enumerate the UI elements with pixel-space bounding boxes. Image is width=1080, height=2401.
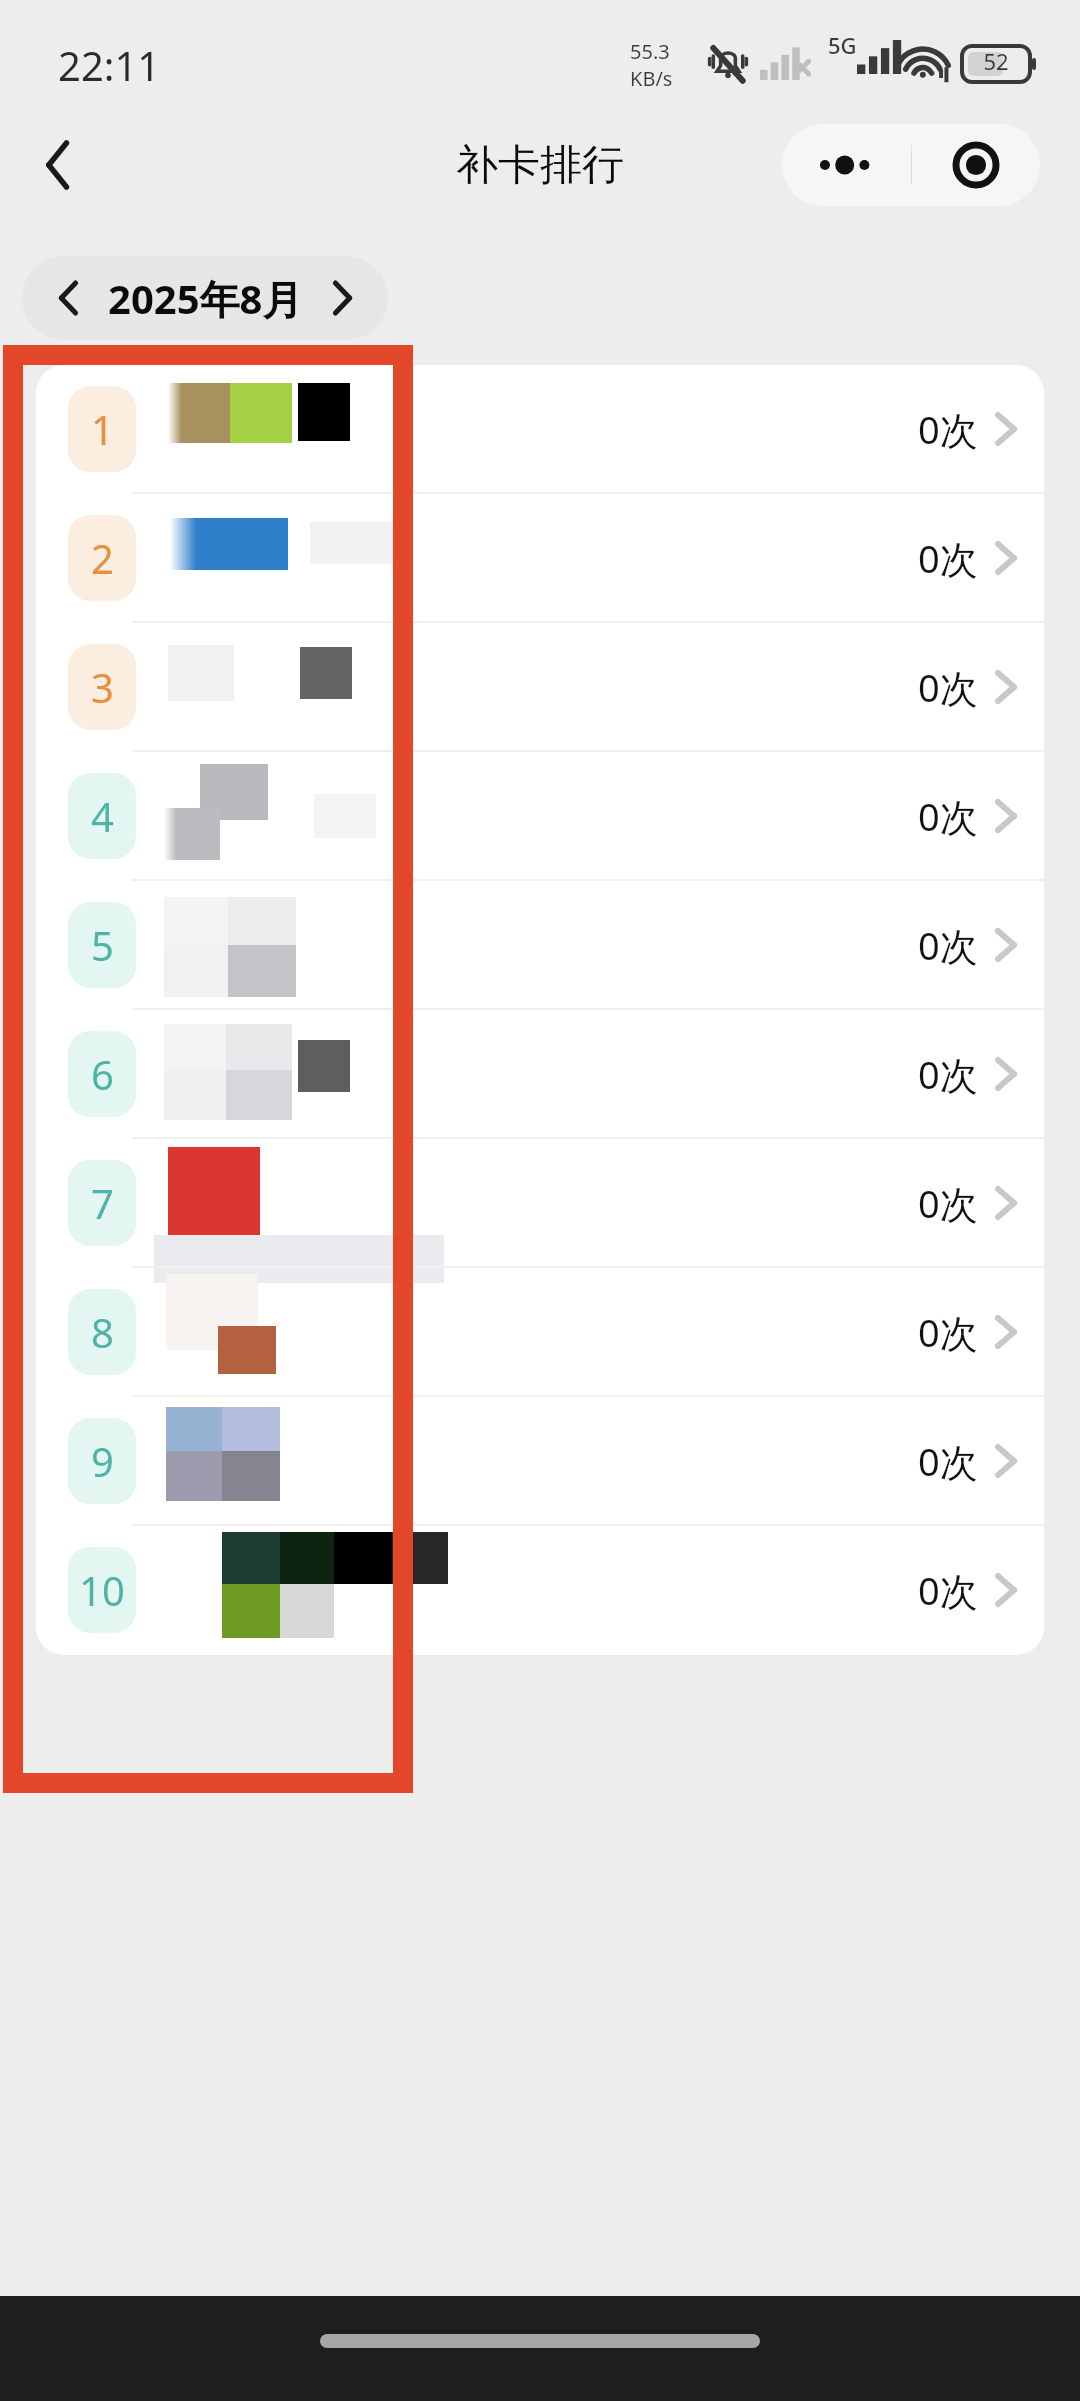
staticText: 8 — [91, 1305, 114, 1359]
staticText: 4 — [91, 789, 114, 843]
staticText: 0次 — [918, 1177, 978, 1229]
staticText: 0次 — [918, 919, 978, 971]
staticText: 52 — [959, 46, 1033, 82]
other: More — [782, 155, 911, 175]
button[interactable]: 1 — [36, 365, 1044, 492]
staticText: 0次 — [918, 1306, 978, 1358]
button[interactable]: More — [782, 124, 1040, 206]
staticText: 0次 — [918, 661, 978, 713]
staticText: 7 — [91, 1176, 114, 1230]
staticText: 22:11 — [58, 38, 161, 92]
staticText: 9 — [91, 1434, 114, 1488]
other: Close — [912, 141, 1040, 189]
button[interactable]: 2 — [36, 494, 1044, 621]
staticText: 3 — [91, 660, 114, 714]
button[interactable]: 10 — [36, 1526, 1044, 1653]
button[interactable]: 3 — [36, 623, 1044, 750]
staticText: KB/s — [630, 65, 673, 92]
staticText: 5G — [828, 30, 857, 60]
staticText: 0次 — [918, 403, 978, 455]
button[interactable]: 8 — [36, 1268, 1044, 1395]
button[interactable]: Back — [14, 120, 104, 210]
staticText: 6 — [91, 1047, 114, 1101]
button[interactable]: 2025年8月 — [22, 256, 388, 340]
button[interactable]: 4 — [36, 752, 1044, 879]
button[interactable]: 9 — [36, 1397, 1044, 1524]
staticText: 0次 — [918, 1435, 978, 1487]
staticText: 10 — [79, 1563, 125, 1617]
button[interactable]: 5 — [36, 881, 1044, 1008]
staticText: 2025年8月 — [108, 271, 303, 326]
button[interactable]: 7 — [36, 1139, 1044, 1266]
staticText: 0次 — [918, 1564, 978, 1616]
staticText: 5 — [91, 918, 114, 972]
staticText: 1 — [91, 402, 114, 456]
staticText: 补卡排行 — [0, 139, 1080, 192]
staticText: 0次 — [918, 790, 978, 842]
staticText: 55.3 — [630, 38, 670, 65]
staticText: 0次 — [918, 532, 978, 584]
staticText: 0次 — [918, 1048, 978, 1100]
button[interactable]: 6 — [36, 1010, 1044, 1137]
staticText: 2 — [91, 531, 114, 585]
